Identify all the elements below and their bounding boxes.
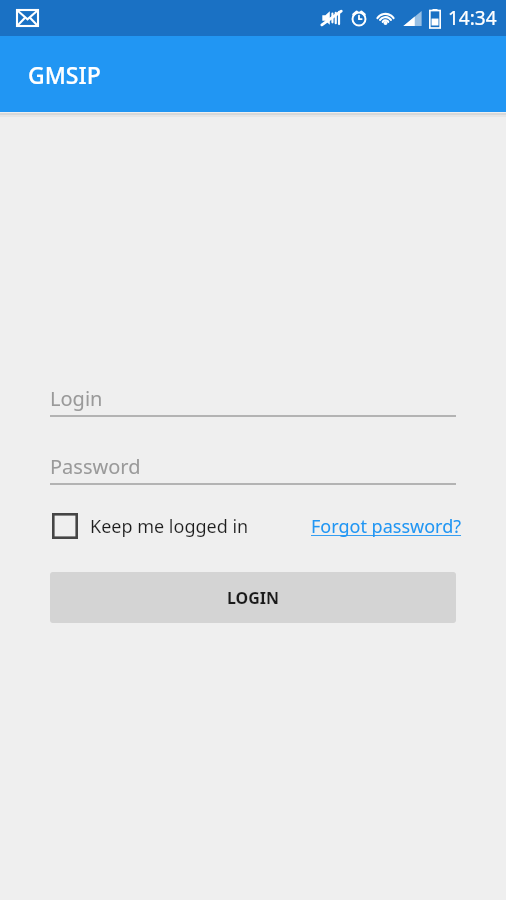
button[interactable]: Password <box>50 449 456 485</box>
button[interactable]: Forgot password? <box>311 514 462 539</box>
staticText: Login <box>50 385 103 412</box>
staticText: Password <box>50 453 141 480</box>
staticText: 14:34 <box>448 5 497 31</box>
button[interactable]: Keep me logged in <box>52 513 249 539</box>
staticText: Keep me logged in <box>90 514 249 539</box>
staticText: LOGIN <box>227 587 280 609</box>
button[interactable]: LOGIN <box>50 572 456 623</box>
button[interactable]: Login <box>50 381 456 417</box>
staticText: GMSIP <box>28 59 101 90</box>
